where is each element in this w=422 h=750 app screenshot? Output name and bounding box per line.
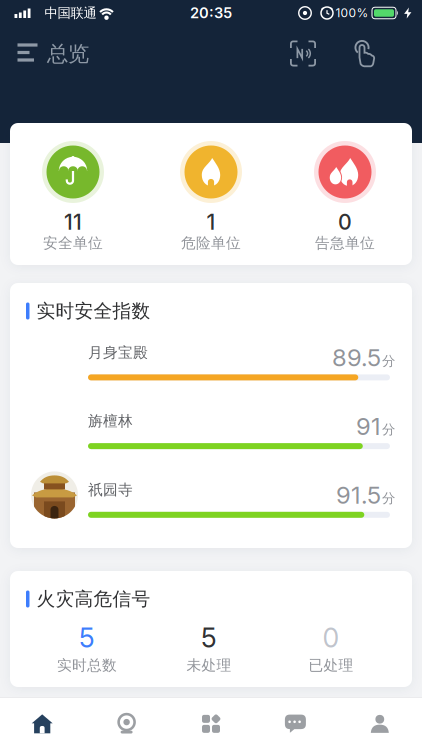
button[interactable]: 1 [144,123,278,265]
staticText: 祇园寺 [88,481,133,499]
staticText: 分 [382,421,395,438]
staticText: 实时总数 [57,656,117,674]
button[interactable]: 月身宝殿 [31,334,395,381]
button[interactable]: 祇园寺 [31,471,395,518]
button[interactable]: 11 [10,123,144,265]
staticText: 未处理 [186,656,231,674]
staticText: 100% [335,6,368,20]
button[interactable]: 5 [26,622,148,674]
staticText: 分 [382,490,395,507]
staticText: 0 [338,209,352,235]
staticText: 危险单位 [181,234,241,252]
staticText: 告急单位 [315,234,375,252]
button[interactable]: NFC 扫描 [282,32,324,74]
staticText: 月身宝殿 [88,343,148,361]
staticText: 1 [206,209,215,235]
button[interactable]: 旃檀林 [31,403,395,450]
staticText: 5 [79,622,95,653]
staticText: 91 [356,412,381,440]
button[interactable]: 监控 [84,698,169,750]
staticText: 旃檀林 [88,412,133,430]
button[interactable]: 应用 [169,698,253,750]
button[interactable]: 0 [278,123,412,265]
button[interactable]: 菜单 [6,35,49,69]
staticText: 安全单位 [43,234,103,252]
staticText: 20:35 [190,4,232,22]
staticText: 中国联通 [44,5,96,21]
button[interactable]: 0 [270,622,392,674]
staticText: 火灾高危信号 [36,587,150,610]
staticText: 89.5 [332,343,381,372]
staticText: 已处理 [308,656,353,674]
staticText: 分 [382,353,395,369]
button[interactable]: 我的 [338,698,422,750]
button[interactable]: 5 [148,622,270,674]
button[interactable]: 手动操作 [344,31,388,75]
staticText: 5 [201,622,217,653]
staticText: 0 [322,622,339,653]
button[interactable]: 总览 [0,698,84,750]
staticText: 11 [64,209,82,235]
staticText: 91.5 [336,481,381,509]
staticText: 总览 [47,41,89,67]
staticText: 实时安全指数 [36,299,150,322]
button[interactable]: 消息 [253,698,338,750]
